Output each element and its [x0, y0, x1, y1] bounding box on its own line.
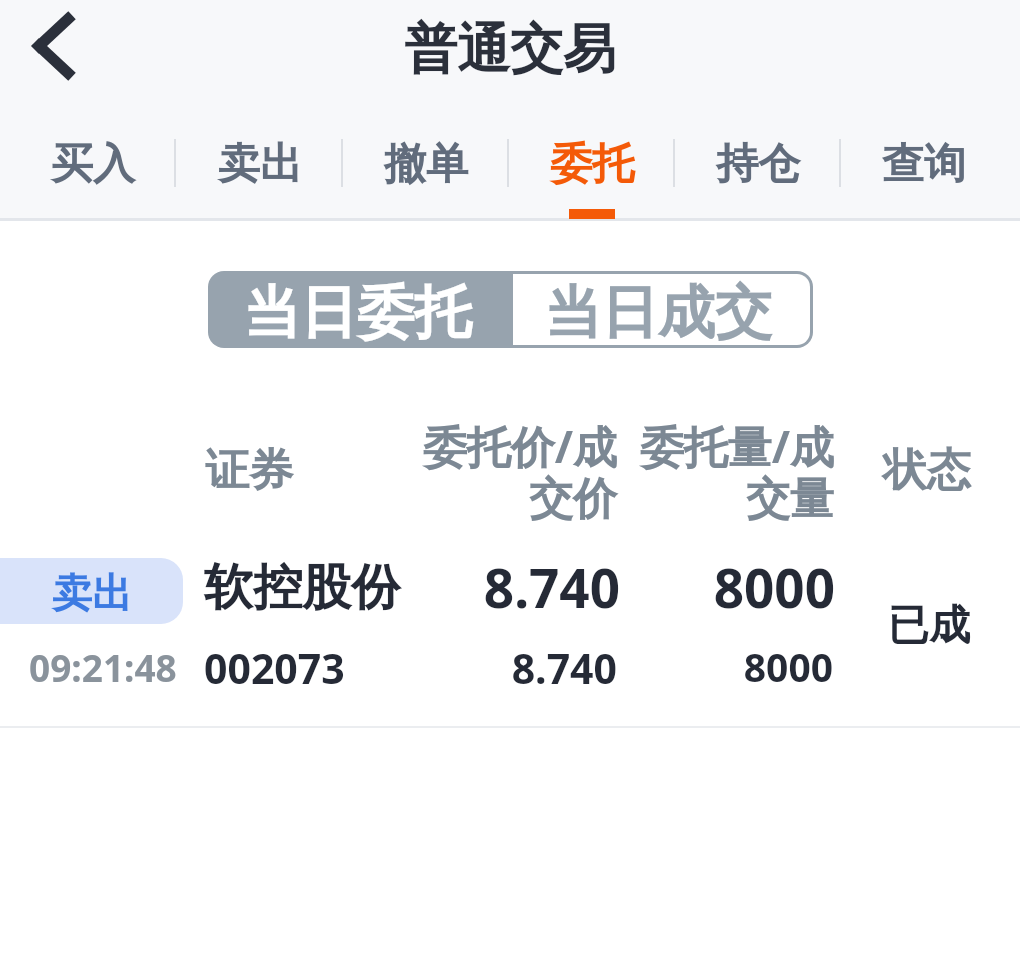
staticText: 卖出	[52, 568, 132, 618]
staticText: 普通交易	[404, 16, 616, 83]
staticText: 8000	[616, 640, 833, 693]
button[interactable]: 当日委托	[208, 271, 513, 348]
staticText: 002073	[204, 640, 345, 696]
button[interactable]: 卖出	[0, 540, 1020, 728]
staticText: 买入	[51, 138, 135, 191]
staticText: 撤单	[384, 138, 468, 191]
staticText: 09:21:48	[29, 642, 177, 692]
staticText: 委托价/成交价	[400, 416, 617, 527]
staticText: 8.740	[403, 551, 620, 623]
staticText: 卖出	[218, 138, 302, 191]
button[interactable]: 查询	[841, 104, 1007, 219]
staticText: 委托	[550, 138, 634, 191]
staticText: 当日委托	[243, 277, 471, 349]
button[interactable]: 当日成交	[513, 271, 813, 348]
staticText: 软控股份	[204, 557, 400, 619]
button[interactable]: 卖出	[176, 104, 343, 219]
button[interactable]: 买入	[9, 104, 176, 219]
button[interactable]: 持仓	[675, 104, 841, 219]
staticText: 委托量/成交量	[617, 416, 834, 527]
staticText: 持仓	[716, 138, 800, 191]
staticText: 8000	[618, 551, 835, 623]
button[interactable]: Back	[0, 0, 100, 100]
button[interactable]: 委托	[509, 104, 675, 219]
staticText: 8.740	[400, 640, 617, 696]
button[interactable]: 撤单	[343, 104, 509, 219]
staticText: 当日成交	[544, 277, 772, 349]
staticText: 已成	[888, 600, 970, 652]
staticText: 状态	[883, 443, 971, 498]
staticText: 证券	[205, 443, 293, 498]
staticText: 查询	[882, 138, 966, 191]
